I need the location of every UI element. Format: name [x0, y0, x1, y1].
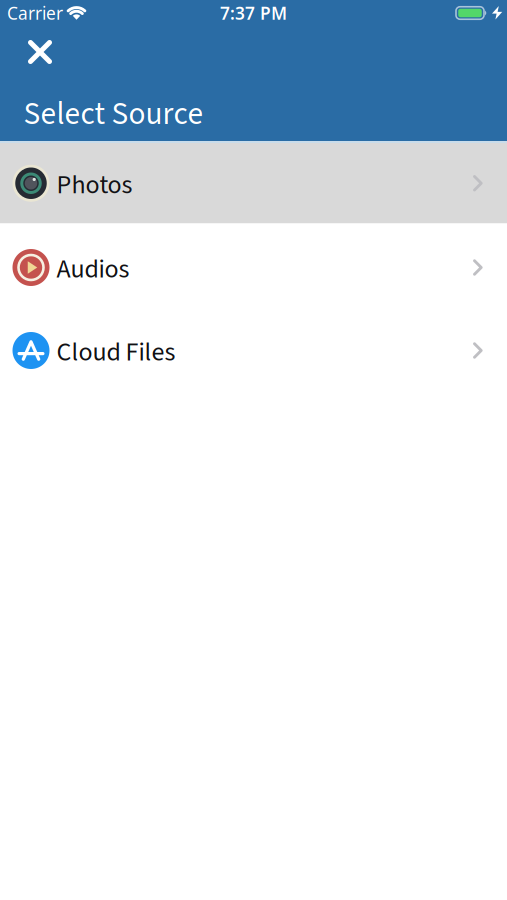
button[interactable]: Photos [0, 143, 507, 223]
staticText: Select Source [23, 92, 203, 137]
staticText: 7:37 PM [220, 1, 287, 24]
button[interactable]: Audios [0, 226, 507, 309]
button[interactable]: Close [20, 32, 60, 72]
staticText: Audios [56, 251, 129, 288]
button[interactable]: Cloud Files [0, 309, 507, 392]
staticText: Cloud Files [56, 334, 175, 371]
staticText: Photos [56, 167, 132, 204]
staticText: Carrier [7, 1, 63, 24]
